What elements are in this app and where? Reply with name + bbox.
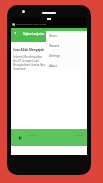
staticText: Reward xyxy=(49,44,60,48)
button[interactable]: Reward xyxy=(46,41,87,51)
staticText: About xyxy=(49,64,58,68)
staticText: Share xyxy=(49,34,57,38)
button[interactable]: Settings xyxy=(46,51,87,61)
staticText: Settings xyxy=(49,54,60,58)
staticText: 00:00 xyxy=(77,133,84,136)
staticText: Selamat Mendengarkan Ilmi KT. dengan Jud… xyxy=(13,55,45,71)
button[interactable]: About xyxy=(46,61,87,70)
staticText: by AA Gym xyxy=(12,36,24,39)
button[interactable]: Play xyxy=(16,134,24,142)
staticText: Cara Allah Mengajak xyxy=(13,48,44,52)
staticText: Kajian Lanjutan xyxy=(23,32,45,36)
staticText: 00:00 xyxy=(29,133,36,136)
staticText: Mendengarkan kajian islami xyxy=(16,23,47,26)
button[interactable]: Share xyxy=(46,31,87,41)
button[interactable]: Back xyxy=(12,30,18,36)
